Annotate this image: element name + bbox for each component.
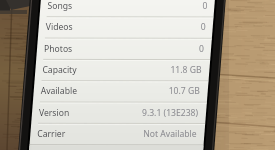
button[interactable] — [0, 0, 275, 150]
